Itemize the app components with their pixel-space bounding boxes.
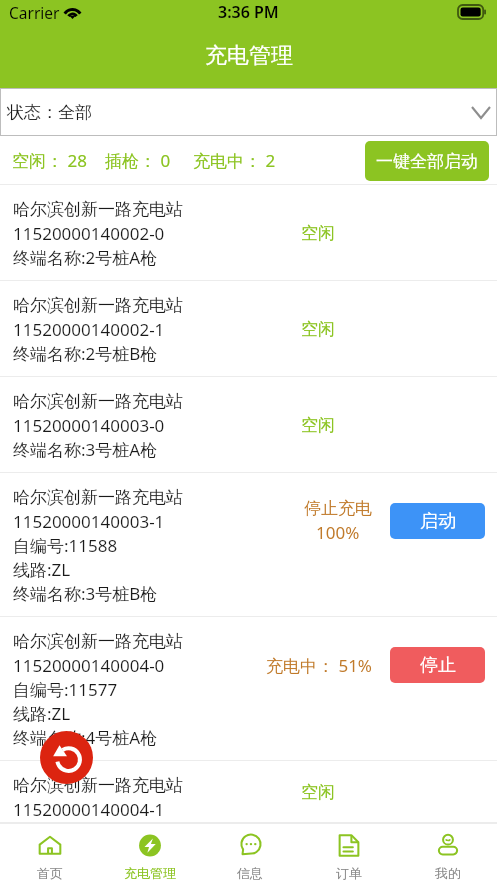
staticText: 空闲 [301, 223, 335, 244]
button[interactable]: 哈尔滨创新一路充电站 [0, 473, 497, 617]
button[interactable]: 首页 [0, 823, 100, 883]
staticText: 哈尔滨创新一路充电站 [13, 199, 183, 220]
staticText: 3:36 PM [218, 1, 279, 23]
staticText: 插枪： 0 [105, 149, 171, 172]
staticText: 11520000140003-0 [13, 414, 165, 437]
staticText: 自编号:11577 [13, 678, 118, 701]
staticText: 充电中： 51% [266, 654, 372, 677]
button[interactable]: 哈尔滨创新一路充电站 [0, 617, 497, 761]
staticText: 11520000140003-1 [13, 510, 165, 533]
staticText: Carrier [9, 2, 60, 23]
staticText: 信息 [237, 865, 263, 881]
button[interactable]: 哈尔滨创新一路充电站 [0, 377, 497, 473]
button[interactable]: 哈尔滨创新一路充电站 [0, 185, 497, 281]
button[interactable]: 一键全部启动 [365, 141, 489, 181]
staticText: 线路:ZL [13, 702, 71, 725]
staticText: 订单 [336, 865, 362, 881]
button[interactable]: 信息 [200, 823, 299, 883]
button[interactable]: 订单 [299, 823, 398, 883]
staticText: 终端名称:3号桩B枪 [13, 582, 158, 605]
staticText: 哈尔滨创新一路充电站 [13, 775, 183, 796]
staticText: 100% [316, 521, 360, 544]
button[interactable]: 状态：全部 [1, 89, 496, 135]
button[interactable]: 哈尔滨创新一路充电站 [0, 761, 497, 823]
staticText: 空闲： 28 [12, 149, 87, 172]
staticText: 充电中： 2 [193, 149, 276, 172]
staticText: 停止充电 [304, 498, 372, 519]
staticText: 终端名称:5号桩A枪 [13, 821, 158, 823]
staticText: 我的 [435, 865, 461, 881]
staticText: 空闲 [301, 782, 335, 803]
staticText: 充电管理 [205, 42, 293, 70]
staticText: 线路:ZL [13, 558, 71, 581]
staticText: 11520000140002-0 [13, 222, 165, 245]
staticText: 充电管理 [124, 865, 176, 881]
button[interactable]: 我的 [398, 823, 497, 883]
staticText: 一键全部启动 [376, 151, 478, 172]
staticText: 11520000140004-1 [13, 798, 165, 821]
staticText: 空闲 [301, 319, 335, 340]
button[interactable]: 哈尔滨创新一路充电站 [0, 281, 497, 377]
staticText: 哈尔滨创新一路充电站 [13, 391, 183, 412]
staticText: 哈尔滨创新一路充电站 [13, 295, 183, 316]
staticText: 11520000140002-1 [13, 318, 165, 341]
button[interactable]: Refresh [40, 731, 93, 784]
staticText: 终端名称:3号桩A枪 [13, 438, 158, 461]
staticText: 状态：全部 [7, 102, 92, 123]
staticText: 停止 [420, 654, 456, 677]
staticText: 首页 [37, 865, 63, 881]
staticText: 自编号:11588 [13, 534, 118, 557]
button[interactable]: 停止 [390, 647, 485, 683]
button[interactable]: 启动 [390, 503, 485, 539]
staticText: 终端名称:2号桩A枪 [13, 246, 158, 269]
button[interactable]: 充电管理 [100, 823, 200, 883]
staticText: 11520000140004-0 [13, 654, 165, 677]
staticText: 空闲 [301, 415, 335, 436]
staticText: 哈尔滨创新一路充电站 [13, 487, 183, 508]
staticText: 启动 [420, 510, 456, 533]
staticText: 终端名称:2号桩B枪 [13, 342, 158, 365]
staticText: 终端名称:4号桩A枪 [13, 726, 158, 749]
staticText: 哈尔滨创新一路充电站 [13, 631, 183, 652]
